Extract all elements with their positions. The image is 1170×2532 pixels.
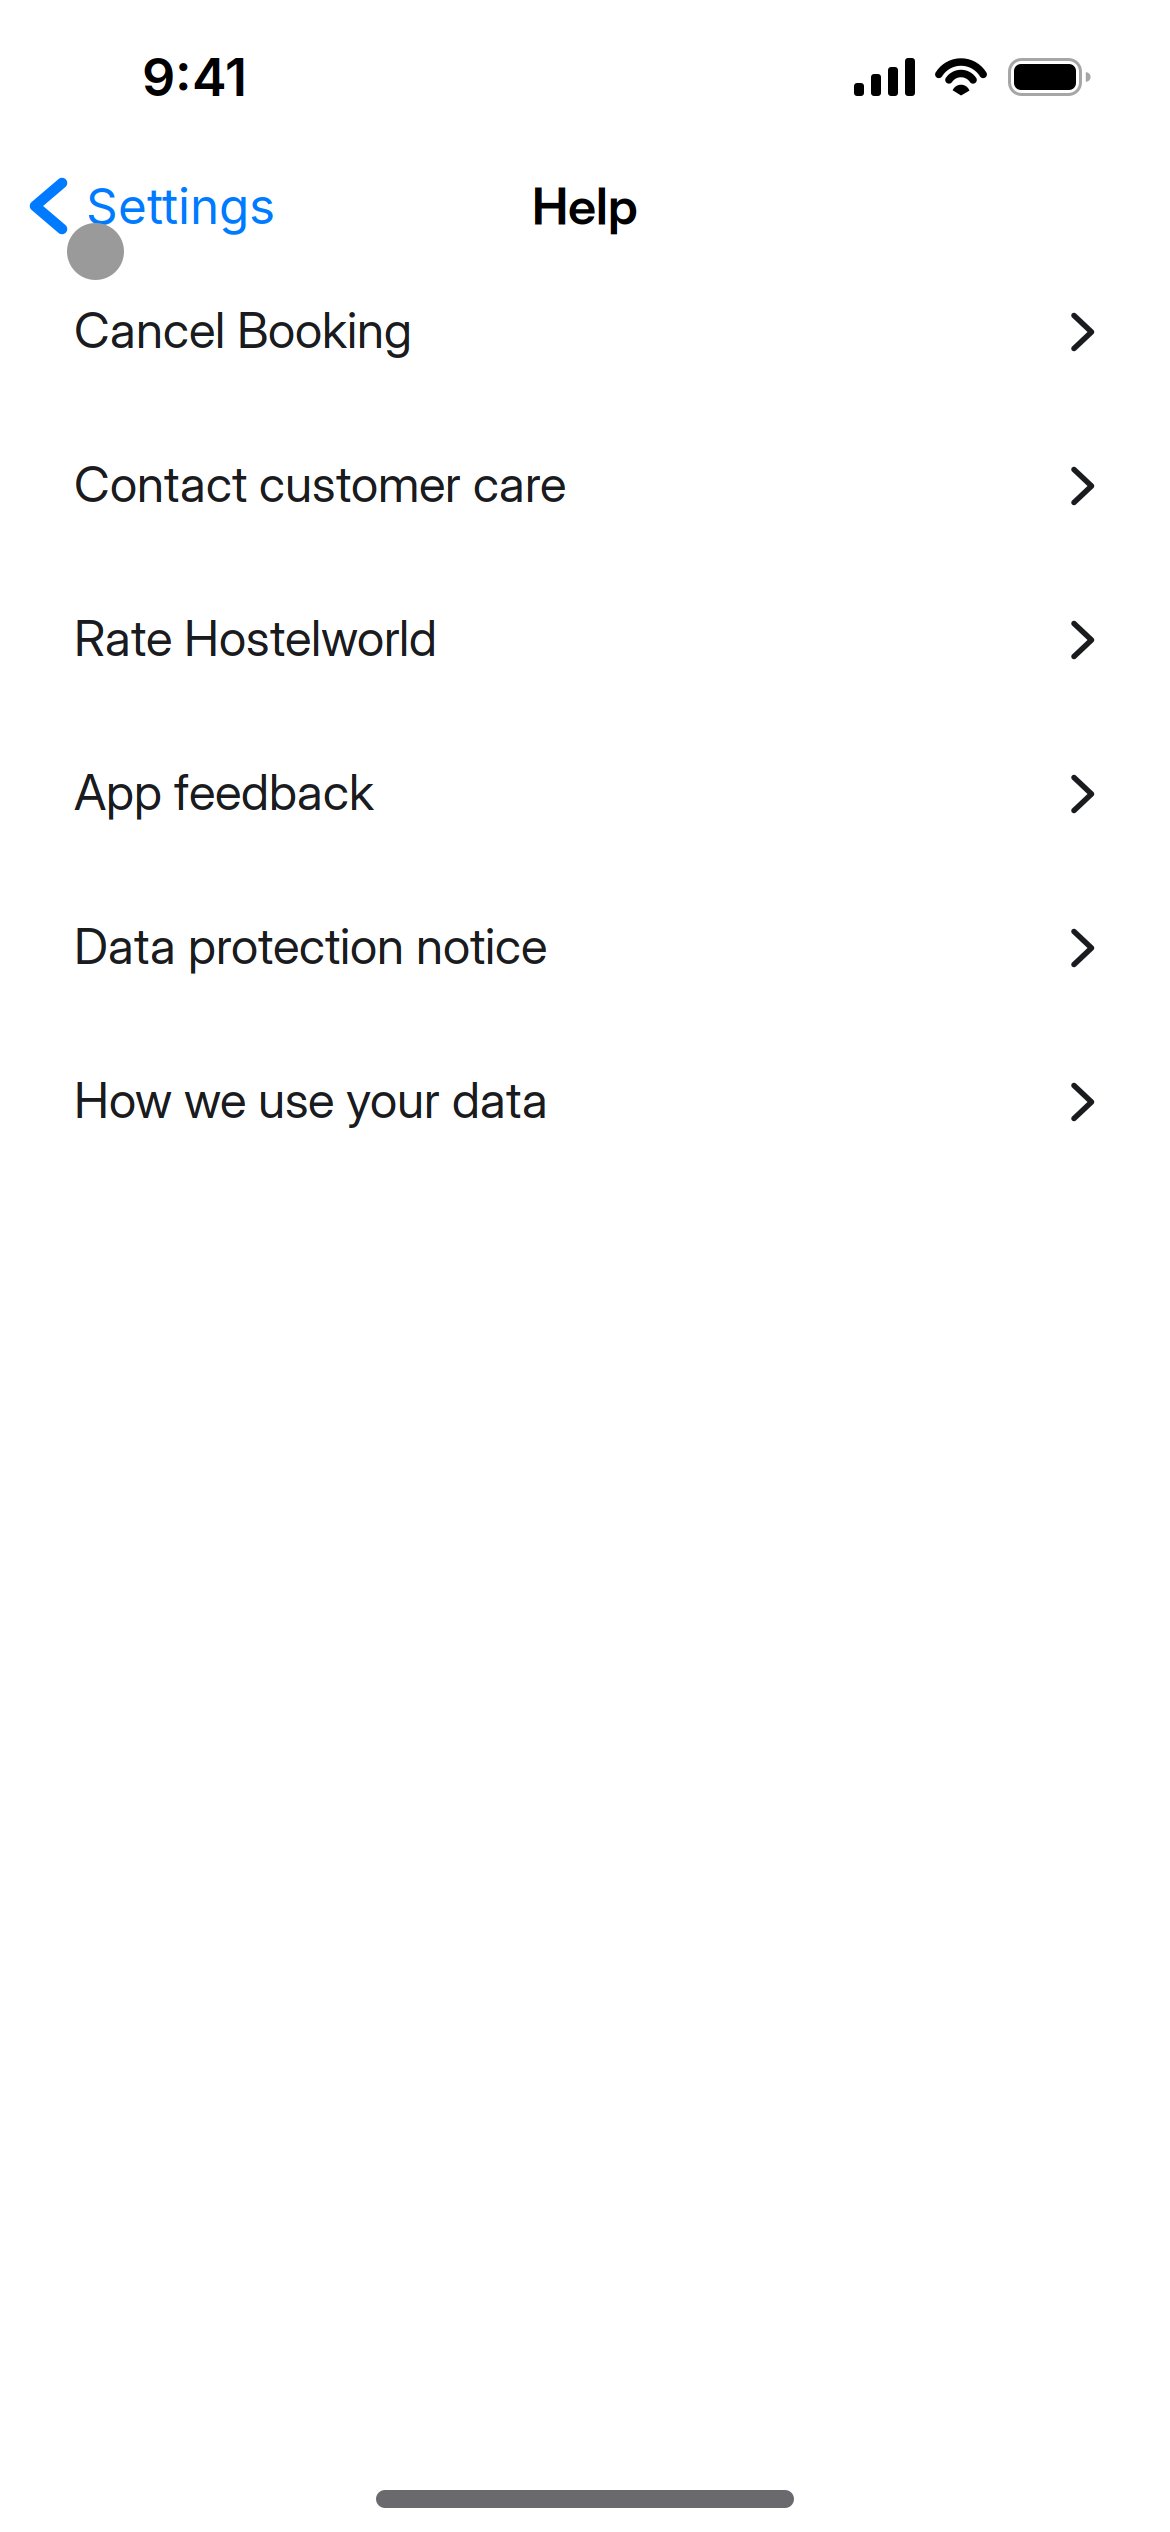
button[interactable]: Data protection notice — [0, 869, 1170, 1023]
staticText: Contact customer care — [74, 454, 566, 514]
staticText: Help — [532, 175, 638, 237]
button[interactable]: How we use your data — [0, 1023, 1170, 1177]
button[interactable]: Cancel Booking — [0, 253, 1170, 407]
staticText: How we use your data — [74, 1070, 548, 1130]
staticText: App feedback — [74, 762, 374, 822]
button[interactable]: Contact customer care — [0, 407, 1170, 561]
staticText: Settings — [86, 176, 275, 236]
button[interactable]: Rate Hostelworld — [0, 561, 1170, 715]
staticText: Data protection notice — [74, 916, 547, 976]
button[interactable]: App feedback — [0, 715, 1170, 869]
staticText: Rate Hostelworld — [74, 608, 437, 668]
staticText: 9:41 — [142, 45, 247, 108]
button[interactable]: Back to Settings — [28, 176, 275, 236]
staticText: Cancel Booking — [74, 300, 412, 360]
